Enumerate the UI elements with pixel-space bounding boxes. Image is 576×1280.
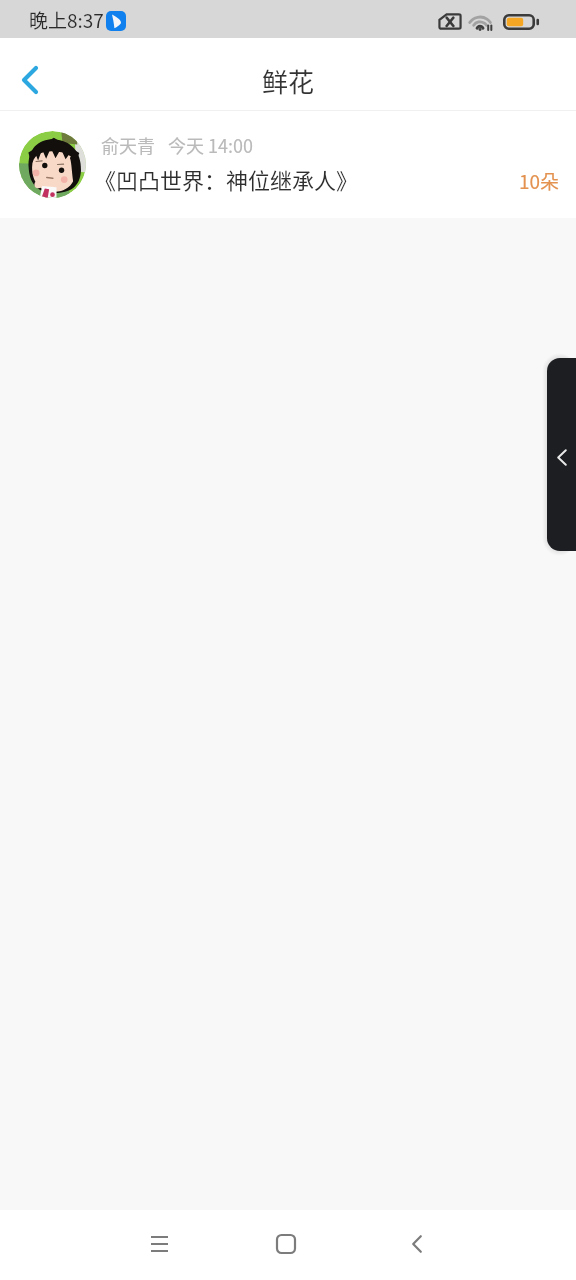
button[interactable]: Home [246,1210,326,1280]
staticText: 10朵 [519,167,560,195]
button[interactable]: Expand side panel [547,358,576,551]
staticText: 俞天青 [101,132,155,158]
staticText: 今天 14:00 [168,132,253,158]
staticText: 鲜花 [262,62,315,100]
staticText: 《凹凸世界：神位继承人》 [94,163,359,195]
staticText: 晚上8:37 [29,6,104,34]
button[interactable]: 俞天青 [0,111,576,218]
button[interactable]: Back [377,1210,457,1280]
button[interactable]: Back [0,38,58,111]
button[interactable]: Recent apps [119,1210,199,1280]
